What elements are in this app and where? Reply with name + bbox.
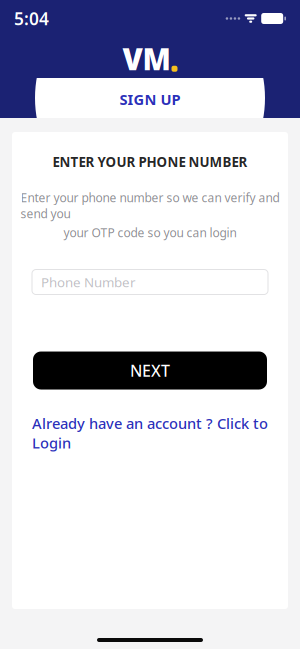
button[interactable]: Phone Number — [32, 269, 268, 294]
staticText: Already have an account ? Click to Login — [32, 413, 268, 452]
button[interactable]: Already have an account ? Click to Login — [24, 409, 276, 456]
staticText: SIGN UP — [119, 89, 180, 109]
staticText: 5:04 — [14, 7, 49, 30]
button[interactable]: NEXT — [33, 351, 267, 389]
staticText: Phone Number — [41, 273, 136, 291]
staticText: your OTP code so you can login — [63, 225, 236, 240]
staticText: Enter your phone number so we can verify… — [20, 190, 279, 222]
staticText: NEXT — [130, 360, 170, 381]
staticText: ENTER YOUR PHONE NUMBER — [52, 153, 247, 171]
staticText: VM — [122, 39, 170, 78]
